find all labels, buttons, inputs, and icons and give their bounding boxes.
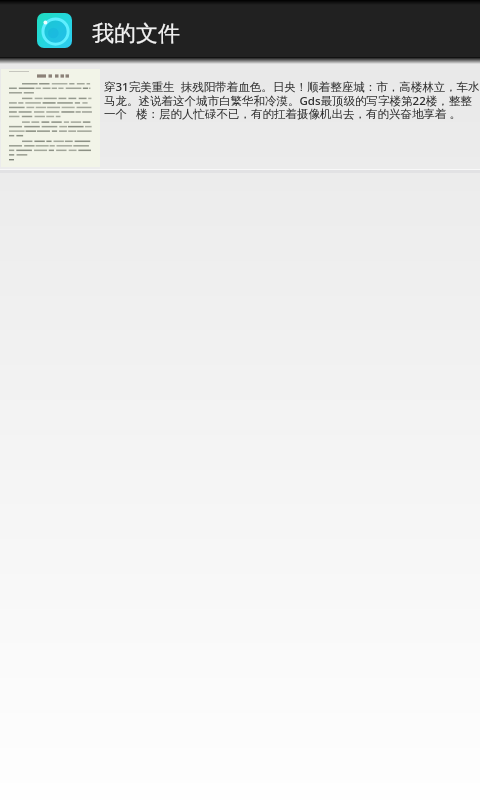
staticText: 穿31完美重生 抹残阳带着血色。日央！顺着整座城：市，高楼林立，车水马龙。述说着…	[104, 79, 480, 121]
button[interactable]: 穿31完美重生 抹残阳带着血色。日央！顺着整座城：市，高楼林立，车水马龙。述说着…	[0, 64, 480, 173]
button[interactable]: App icon	[0, 0, 480, 35]
staticText: 穿31完美重生 抹残阳带着血色。日央！顺着整座城：市，高楼林立，车水马龙。述说着…	[104, 79, 480, 121]
staticText: 我的文件	[92, 20, 180, 48]
other: App icon	[37, 13, 72, 48]
